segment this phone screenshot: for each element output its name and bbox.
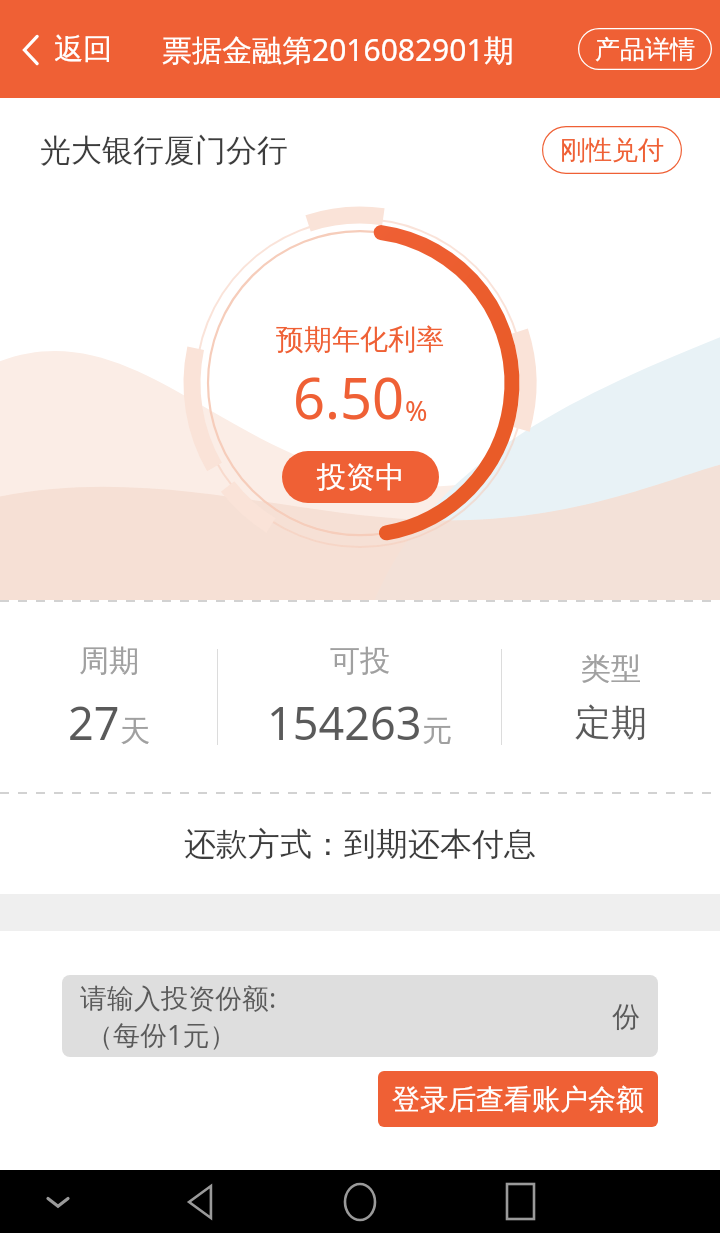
staticText: （每份1元） [86,1016,237,1053]
staticText: 投资中 [317,459,404,496]
staticText: % [405,392,428,429]
button[interactable]: Home [328,1170,392,1233]
staticText: 周期 [79,642,139,680]
button[interactable]: 刚性兑付 [542,126,682,174]
staticText: 27 [68,692,120,753]
staticText: 返回 [54,31,112,68]
button[interactable]: 产品详情 [578,28,712,70]
staticText: 登录后查看账户余额 [392,1082,644,1117]
staticText: 类型 [581,650,641,688]
staticText: 还款方式：到期还本付息 [184,824,536,864]
staticText: 6.50 [293,359,405,435]
other: Back [20,33,42,67]
staticText: 刚性兑付 [560,134,664,167]
staticText: 元 [422,712,452,750]
staticText: 份 [612,999,640,1034]
staticText: 154263 [267,692,422,753]
staticText: 光大银行厦门分行 [40,131,288,170]
button[interactable]: Back [12,25,120,74]
staticText: 可投 [330,642,390,680]
button[interactable]: Recent apps [488,1170,552,1233]
staticText: 产品详情 [595,34,695,65]
button[interactable]: 登录后查看账户余额 [378,1071,658,1127]
staticText: 票据金融第2016082901期 [162,29,514,70]
button[interactable]: 投资中 [282,451,439,503]
staticText: 预期年化利率 [276,322,444,357]
staticText: 定期 [575,700,647,745]
staticText: 天 [120,712,150,750]
button[interactable]: 请输入投资份额: [62,975,658,1057]
button[interactable]: Back [168,1170,232,1233]
button[interactable]: Hide keyboard [30,1174,86,1230]
staticText: 请输入投资份额: [80,979,277,1016]
